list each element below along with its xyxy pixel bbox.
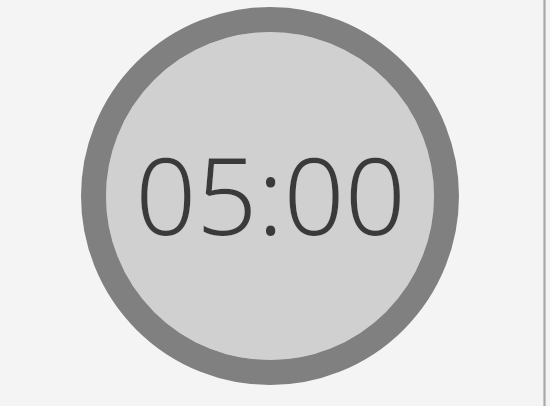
staticText: 05:00: [135, 121, 406, 267]
button[interactable]: Timer 05:00: [81, 7, 459, 385]
